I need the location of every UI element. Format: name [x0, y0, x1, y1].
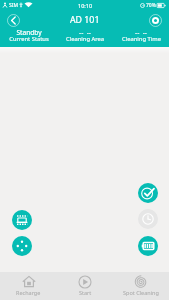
- staticText: Recharge: [16, 289, 41, 296]
- staticText: SIM: [9, 2, 18, 9]
- staticText: Current Status: [9, 35, 49, 43]
- staticText: Cleaning Time: [122, 35, 161, 43]
- button[interactable]: Recharge: [0, 272, 57, 300]
- button[interactable]: Carpet mode: [12, 210, 32, 230]
- button[interactable]: Start: [57, 272, 113, 300]
- button[interactable]: Find robot: [138, 183, 158, 203]
- button[interactable]: Battery: [138, 236, 158, 256]
- button[interactable]: Settings: [148, 13, 163, 28]
- button[interactable]: Spot Cleaning: [113, 272, 169, 300]
- staticText: 70%: [146, 2, 156, 9]
- button[interactable]: Schedule: [138, 209, 158, 229]
- staticText: 10:10: [78, 2, 93, 9]
- staticText: Cleaning Area: [66, 35, 104, 43]
- staticText: Spot Cleaning: [123, 289, 159, 296]
- staticText: Start: [79, 289, 92, 296]
- staticText: Standby: [16, 28, 42, 37]
- button[interactable]: Zones: [12, 236, 32, 256]
- button[interactable]: Back: [6, 13, 21, 28]
- staticText: AD 101: [70, 14, 100, 26]
- staticText: -- --: [79, 28, 91, 37]
- staticText: -- --: [135, 28, 147, 37]
